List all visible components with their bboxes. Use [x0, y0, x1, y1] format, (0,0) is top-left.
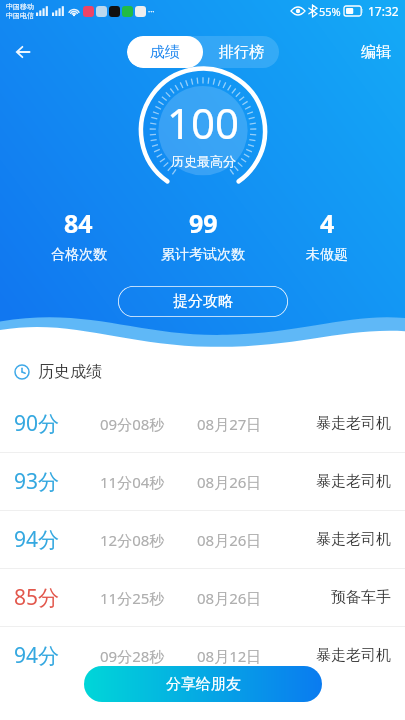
- staticText: 84: [64, 206, 93, 240]
- staticText: 11分25秒: [100, 588, 165, 608]
- staticText: 暴走老司机: [316, 472, 391, 491]
- staticText: 4: [320, 206, 335, 240]
- staticText: 合格次数: [51, 246, 107, 264]
- button[interactable]: Back: [0, 28, 48, 76]
- staticText: 99: [189, 206, 218, 240]
- staticText: 历史最高分: [171, 153, 236, 169]
- staticText: 08月26日: [197, 530, 262, 550]
- staticText: 分享给朋友: [166, 675, 241, 694]
- button[interactable]: 85分: [0, 569, 405, 627]
- staticText: 暴走老司机: [316, 646, 391, 665]
- staticText: 编辑: [361, 43, 391, 62]
- staticText: 11分04秒: [100, 472, 165, 492]
- button[interactable]: 93分: [0, 453, 405, 511]
- staticText: ···: [148, 6, 155, 17]
- staticText: 93分: [14, 467, 60, 496]
- button[interactable]: 4: [265, 206, 389, 264]
- staticText: 提分攻略: [173, 292, 233, 311]
- button[interactable]: 提分攻略: [118, 286, 288, 317]
- button[interactable]: 99: [141, 206, 265, 264]
- staticText: 09分28秒: [100, 646, 165, 666]
- staticText: 成绩: [150, 43, 180, 62]
- staticText: 85分: [14, 583, 60, 612]
- staticText: 未做题: [306, 246, 348, 264]
- staticText: 94分: [14, 525, 60, 554]
- staticText: 08月26日: [197, 588, 262, 608]
- button[interactable]: 94分: [0, 511, 405, 569]
- staticText: 中国移动: [6, 2, 34, 11]
- staticText: 08月26日: [197, 472, 262, 492]
- staticText: 暴走老司机: [316, 530, 391, 549]
- button[interactable]: 94分: [0, 627, 405, 684]
- staticText: 12分08秒: [100, 530, 165, 550]
- staticText: 09分08秒: [100, 414, 165, 434]
- staticText: 08月27日: [197, 414, 262, 434]
- button[interactable]: 编辑: [361, 43, 391, 62]
- staticText: 累计考试次数: [161, 246, 245, 264]
- staticText: 历史成绩: [38, 362, 102, 382]
- staticText: 08月12日: [197, 646, 262, 666]
- staticText: 预备车手: [331, 588, 391, 607]
- staticText: 100: [167, 94, 240, 151]
- staticText: 17:32: [368, 3, 399, 19]
- staticText: 55%: [319, 4, 341, 19]
- staticText: 90分: [14, 409, 60, 438]
- button[interactable]: 90分: [0, 395, 405, 453]
- button[interactable]: 分享给朋友: [84, 666, 322, 702]
- staticText: 中国电信: [6, 11, 34, 20]
- staticText: 暴走老司机: [316, 414, 391, 433]
- button[interactable]: 84: [16, 206, 141, 264]
- staticText: 排行榜: [219, 43, 264, 62]
- staticText: 94分: [14, 641, 60, 670]
- button[interactable]: 成绩: [127, 36, 203, 68]
- button[interactable]: 排行榜: [203, 36, 279, 68]
